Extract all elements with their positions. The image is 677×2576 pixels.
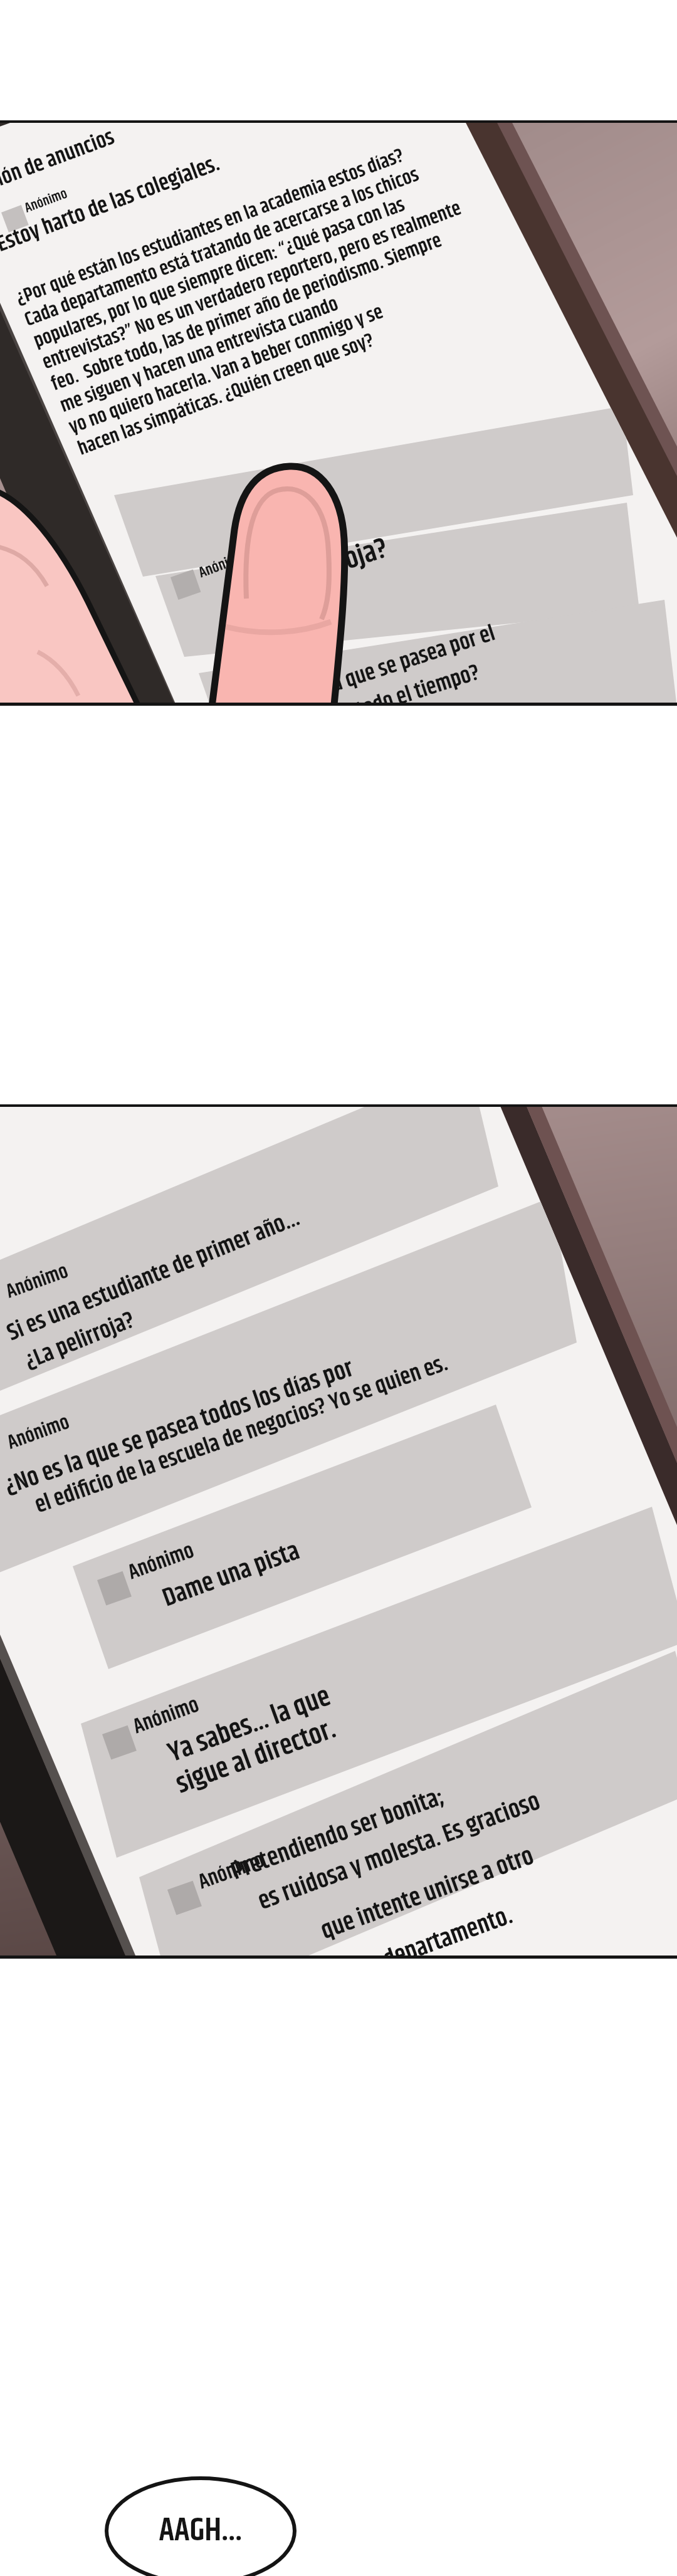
button[interactable] — [0, 0, 677, 2576]
